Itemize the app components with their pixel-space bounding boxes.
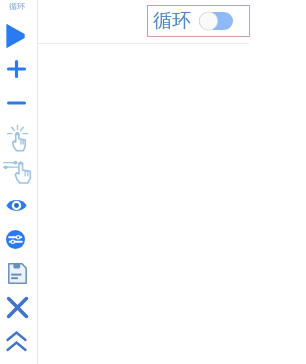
button[interactable]: Add (0, 53, 32, 85)
button[interactable]: Play (0, 20, 32, 52)
button[interactable]: 循环 (147, 5, 250, 37)
button[interactable]: Close (1, 291, 33, 323)
button[interactable]: Collapse (0, 325, 32, 357)
button[interactable]: Settings (0, 223, 31, 255)
button[interactable]: Loop toggle (199, 10, 233, 32)
button[interactable]: Swipe (2, 156, 34, 188)
button[interactable]: Tap (1, 122, 33, 154)
button[interactable]: Loop (1, 0, 33, 22)
staticText: 循环 (153, 9, 191, 33)
button[interactable]: Save (1, 257, 33, 289)
button[interactable]: Preview (0, 189, 32, 221)
staticText: 循环 (9, 1, 25, 11)
button[interactable]: Remove (0, 87, 32, 119)
